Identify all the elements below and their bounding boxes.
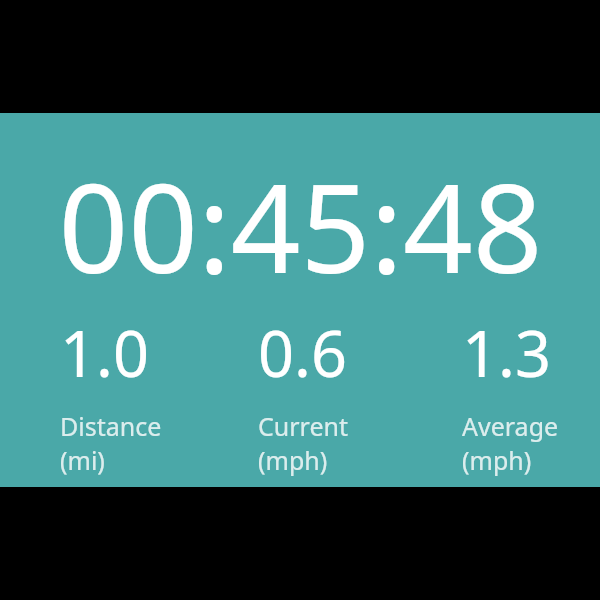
staticText: (mi) bbox=[60, 443, 105, 477]
staticText: (mph) bbox=[462, 443, 532, 477]
staticText: 1.3 bbox=[462, 310, 551, 396]
staticText: Distance bbox=[60, 409, 162, 443]
staticText: (mph) bbox=[258, 443, 328, 477]
staticText: Current bbox=[258, 409, 348, 443]
staticText: Average bbox=[462, 409, 559, 443]
staticText: 00:45:48 bbox=[58, 143, 543, 293]
staticText: 0.6 bbox=[258, 310, 347, 396]
button[interactable]: Current 0.6 (mph) bbox=[258, 310, 462, 477]
button[interactable]: Distance 1.0 (mi) bbox=[60, 310, 258, 477]
staticText: 1.0 bbox=[60, 310, 149, 396]
button[interactable]: 00:45:48 bbox=[0, 143, 600, 293]
button[interactable]: Average 1.3 (mph) bbox=[462, 310, 600, 477]
